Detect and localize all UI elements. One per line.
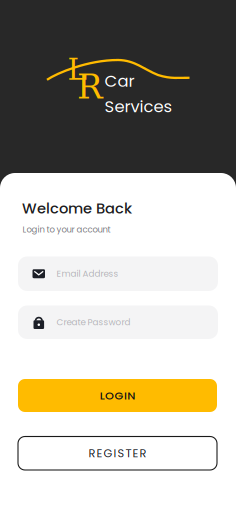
staticText: Car <box>104 69 134 92</box>
staticText: Services <box>104 95 172 118</box>
button[interactable]: REGISTER <box>18 436 217 470</box>
staticText: Login to your account <box>22 223 110 235</box>
button[interactable]: LOGIN <box>18 379 217 412</box>
staticText: Email Address <box>56 268 118 280</box>
staticText: R <box>77 67 103 107</box>
staticText: Welcome Back <box>22 198 132 218</box>
staticText: L <box>67 52 86 87</box>
staticText: LOGIN <box>100 388 135 403</box>
staticText: Create Password <box>57 316 131 328</box>
staticText: REGISTER <box>88 445 146 461</box>
